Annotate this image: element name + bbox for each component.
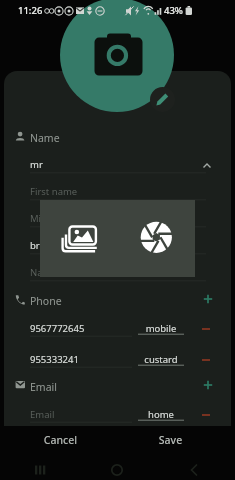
- button[interactable]: Save: [114, 427, 227, 452]
- button[interactable]: Back: [182, 458, 206, 480]
- staticText: Email: [30, 408, 55, 421]
- staticText: 11:26: [18, 4, 43, 17]
- staticText: brian: [30, 239, 54, 252]
- button[interactable]: 9567772645: [0, 322, 235, 336]
- button[interactable]: Remove custard: [194, 348, 218, 362]
- staticText: Save: [114, 433, 227, 447]
- staticText: Name suffix: [30, 266, 84, 279]
- staticText: 43%: [164, 4, 183, 17]
- button[interactable]: Add Phone: [196, 287, 220, 303]
- staticText: Name: [30, 131, 60, 145]
- staticText: Email: [30, 380, 57, 394]
- staticText: 9567772645: [30, 322, 85, 335]
- button[interactable]: First name: [0, 185, 235, 199]
- staticText: custard: [138, 353, 184, 366]
- staticText: mobile: [138, 322, 184, 335]
- staticText: Phone: [30, 294, 62, 308]
- button[interactable]: Middle name: [0, 212, 235, 226]
- staticText: First name: [30, 185, 78, 198]
- staticText: Middle name: [30, 212, 89, 225]
- button[interactable]: Add Email: [196, 373, 220, 389]
- button[interactable]: 955333241: [0, 353, 235, 367]
- button[interactable]: Take photo: [125, 208, 187, 270]
- button[interactable]: Name suffix: [0, 266, 235, 280]
- button[interactable]: Change photo: [150, 87, 175, 112]
- staticText: Cancel: [4, 433, 117, 447]
- button[interactable]: Email: [0, 408, 235, 422]
- button[interactable]: mr: [0, 158, 235, 172]
- staticText: 955333241: [30, 353, 79, 366]
- staticText: home: [138, 408, 184, 421]
- button[interactable]: Remove home: [194, 403, 218, 417]
- button[interactable]: Cancel: [4, 427, 117, 452]
- button[interactable]: Recent apps: [28, 458, 52, 480]
- button[interactable]: brian: [0, 239, 235, 253]
- button[interactable]: Home: [105, 458, 129, 480]
- staticText: mr: [30, 158, 43, 171]
- button[interactable]: Choose from gallery: [48, 208, 110, 270]
- button[interactable]: Remove mobile: [194, 317, 218, 331]
